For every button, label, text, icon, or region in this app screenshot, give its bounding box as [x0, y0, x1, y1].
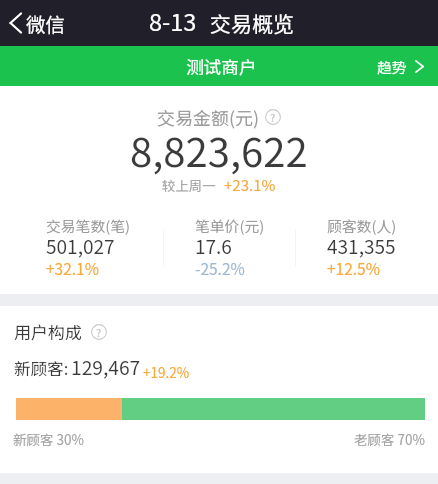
- button[interactable]: 用户构成: [14, 319, 107, 344]
- button[interactable]: 微信: [0, 4, 78, 42]
- staticText: 老顾客 70%: [354, 429, 425, 449]
- staticText: 微信: [26, 9, 66, 37]
- staticText: 新顾客:: [14, 356, 69, 380]
- staticText: 新顾客 30%: [13, 429, 84, 449]
- button[interactable]: Help: [265, 109, 281, 125]
- staticText: +23.1%: [224, 174, 276, 196]
- staticText: 431,355: [327, 232, 396, 260]
- staticText: 129,467: [71, 353, 141, 381]
- staticText: +12.5%: [327, 257, 380, 279]
- staticText: 交易概览: [210, 8, 294, 38]
- button[interactable]: 笔单价(元): [195, 0, 265, 28]
- staticText: 顾客数(人): [327, 215, 397, 236]
- staticText: 交易笔数(笔): [46, 215, 130, 236]
- staticText: +32.1%: [46, 257, 99, 279]
- staticText: 交易金额(元): [157, 104, 260, 130]
- staticText: ?: [96, 324, 102, 340]
- staticText: 测试商户: [186, 54, 257, 79]
- button[interactable]: Help: [91, 324, 107, 340]
- staticText: 501,027: [46, 232, 115, 260]
- staticText: 趋势: [377, 56, 407, 77]
- staticText: 8-13: [149, 4, 197, 38]
- staticText: 8,823,622: [130, 121, 308, 179]
- staticText: 较上周一: [162, 175, 216, 194]
- staticText: ?: [270, 109, 276, 125]
- button[interactable]: 趋势: [365, 50, 438, 83]
- button[interactable]: 交易笔数(笔): [46, 0, 130, 28]
- staticText: 笔单价(元): [195, 215, 265, 236]
- staticText: 用户构成: [14, 319, 82, 344]
- staticText: 17.6: [195, 232, 232, 260]
- staticText: -25.2%: [195, 257, 245, 279]
- staticText: +19.2%: [143, 362, 190, 382]
